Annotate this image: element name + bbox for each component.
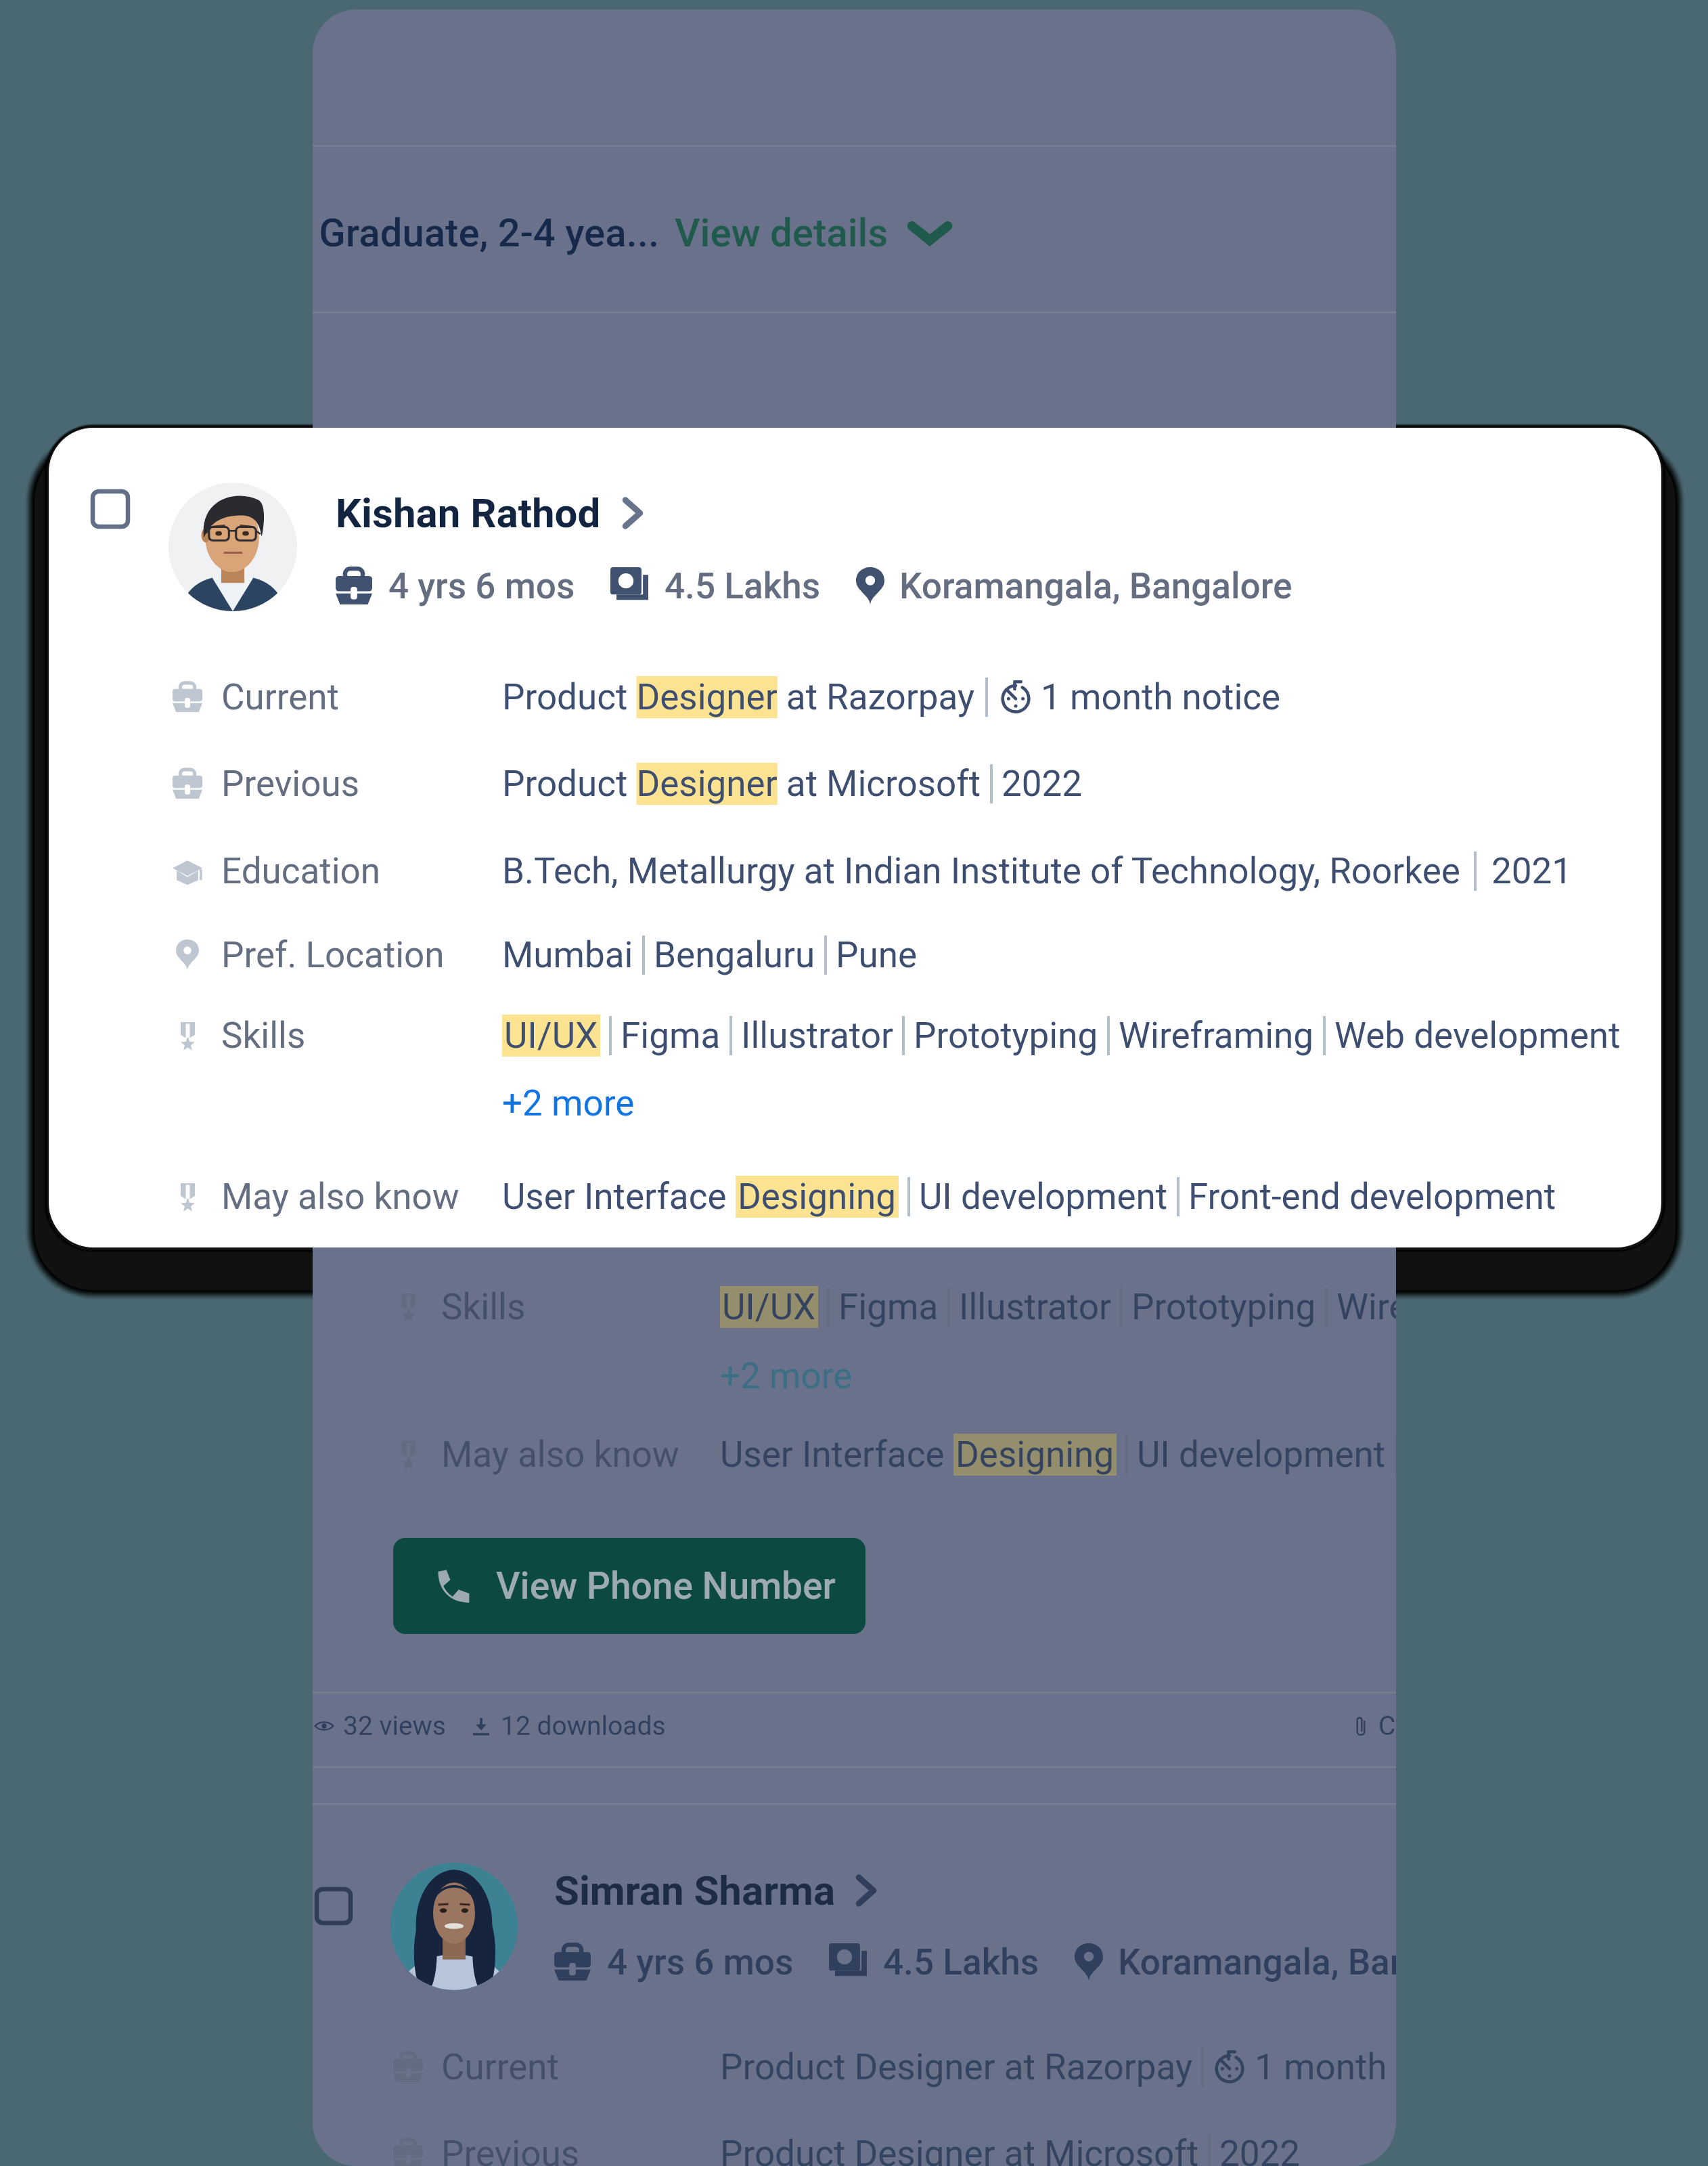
- staticText: Pune: [836, 934, 918, 976]
- button[interactable]: +2 more: [720, 1355, 853, 1397]
- staticText: May also know: [441, 1434, 679, 1476]
- staticText: Simran Sharma: [554, 1867, 836, 1914]
- staticText: UI development: [919, 1176, 1168, 1218]
- staticText: Product Designer at Microsoft: [720, 2133, 1199, 2166]
- staticText: Designing: [956, 1434, 1115, 1476]
- staticText: 4 yrs 6 mos: [388, 565, 575, 607]
- staticText: Bengaluru: [654, 934, 815, 976]
- staticText: View details: [675, 210, 889, 256]
- staticText: Designing: [738, 1176, 897, 1218]
- staticText: Wire: [1336, 1286, 1396, 1328]
- staticText: , Graduate, 2-4 yea...: [313, 210, 660, 256]
- staticText: 4.5 Lakhs: [883, 1941, 1039, 1983]
- staticText: Skills: [221, 1015, 306, 1057]
- staticText: Product Designer at Microsoft: [502, 763, 981, 805]
- button[interactable]: Select candidate Kishan Rathod: [91, 489, 130, 529]
- staticText: 2022: [1002, 763, 1083, 805]
- staticText: Web development: [1334, 1015, 1621, 1057]
- staticText: 4.5 Lakhs: [665, 565, 821, 607]
- staticText: 12 downloads: [501, 1710, 666, 1742]
- staticText: C: [1378, 1710, 1396, 1742]
- staticText: +2 more: [502, 1082, 635, 1124]
- staticText: Wireframing: [1119, 1015, 1314, 1057]
- button[interactable]: Kishan Rathod: [336, 489, 643, 537]
- staticText: Current: [221, 676, 339, 718]
- staticText: Product Designer at Razorpay: [720, 2046, 1192, 2088]
- button[interactable]: +2 more: [502, 1082, 635, 1124]
- staticText: Koramangala, Bangalore: [899, 565, 1293, 607]
- button[interactable]: , Graduate, 2-4 yea...: [313, 210, 952, 256]
- staticText: Previous: [441, 2133, 580, 2166]
- staticText: Prototyping: [914, 1015, 1098, 1057]
- button[interactable]: View Phone Number: [393, 1538, 866, 1634]
- button[interactable]: Simran Sharma: [554, 1867, 876, 1914]
- staticText: 1 month notice: [1041, 676, 1281, 718]
- staticText: 32 views: [343, 1710, 447, 1742]
- staticText: Product Designer at Razorpay: [502, 676, 974, 718]
- staticText: 1 month n: [1255, 2046, 1396, 2088]
- staticText: Education: [221, 850, 381, 892]
- staticText: Kishan Rathod: [336, 489, 601, 537]
- staticText: Pref. Location: [221, 934, 445, 976]
- staticText: Koramangala, Ban: [1118, 1941, 1396, 1983]
- staticText: 2022: [1219, 2133, 1301, 2166]
- staticText: Illustrator: [959, 1286, 1111, 1328]
- staticText: UI/UX: [504, 1015, 598, 1057]
- staticText: Mumbai: [502, 934, 633, 976]
- staticText: May also know: [221, 1176, 459, 1218]
- staticText: Current: [441, 2046, 559, 2088]
- staticText: Front-end development: [1188, 1176, 1556, 1218]
- staticText: View Phone Number: [496, 1564, 836, 1608]
- staticText: Skills: [441, 1286, 526, 1328]
- staticText: UI development: [1137, 1434, 1386, 1476]
- staticText: UI/UX: [722, 1286, 816, 1328]
- staticText: 2021: [1491, 850, 1573, 892]
- staticText: Previous: [221, 763, 360, 805]
- button[interactable]: Select candidate Simran Sharma: [315, 1887, 353, 1925]
- staticText: Figma: [838, 1286, 939, 1328]
- staticText: User Interface: [502, 1176, 736, 1218]
- staticText: User Interface: [720, 1434, 953, 1476]
- staticText: Figma: [621, 1015, 721, 1057]
- staticText: Prototyping: [1131, 1286, 1316, 1328]
- staticText: B.Tech, Metallurgy at Indian Institute o…: [502, 850, 1460, 892]
- staticText: 4 yrs 6 mos: [607, 1941, 794, 1983]
- staticText: Illustrator: [741, 1015, 893, 1057]
